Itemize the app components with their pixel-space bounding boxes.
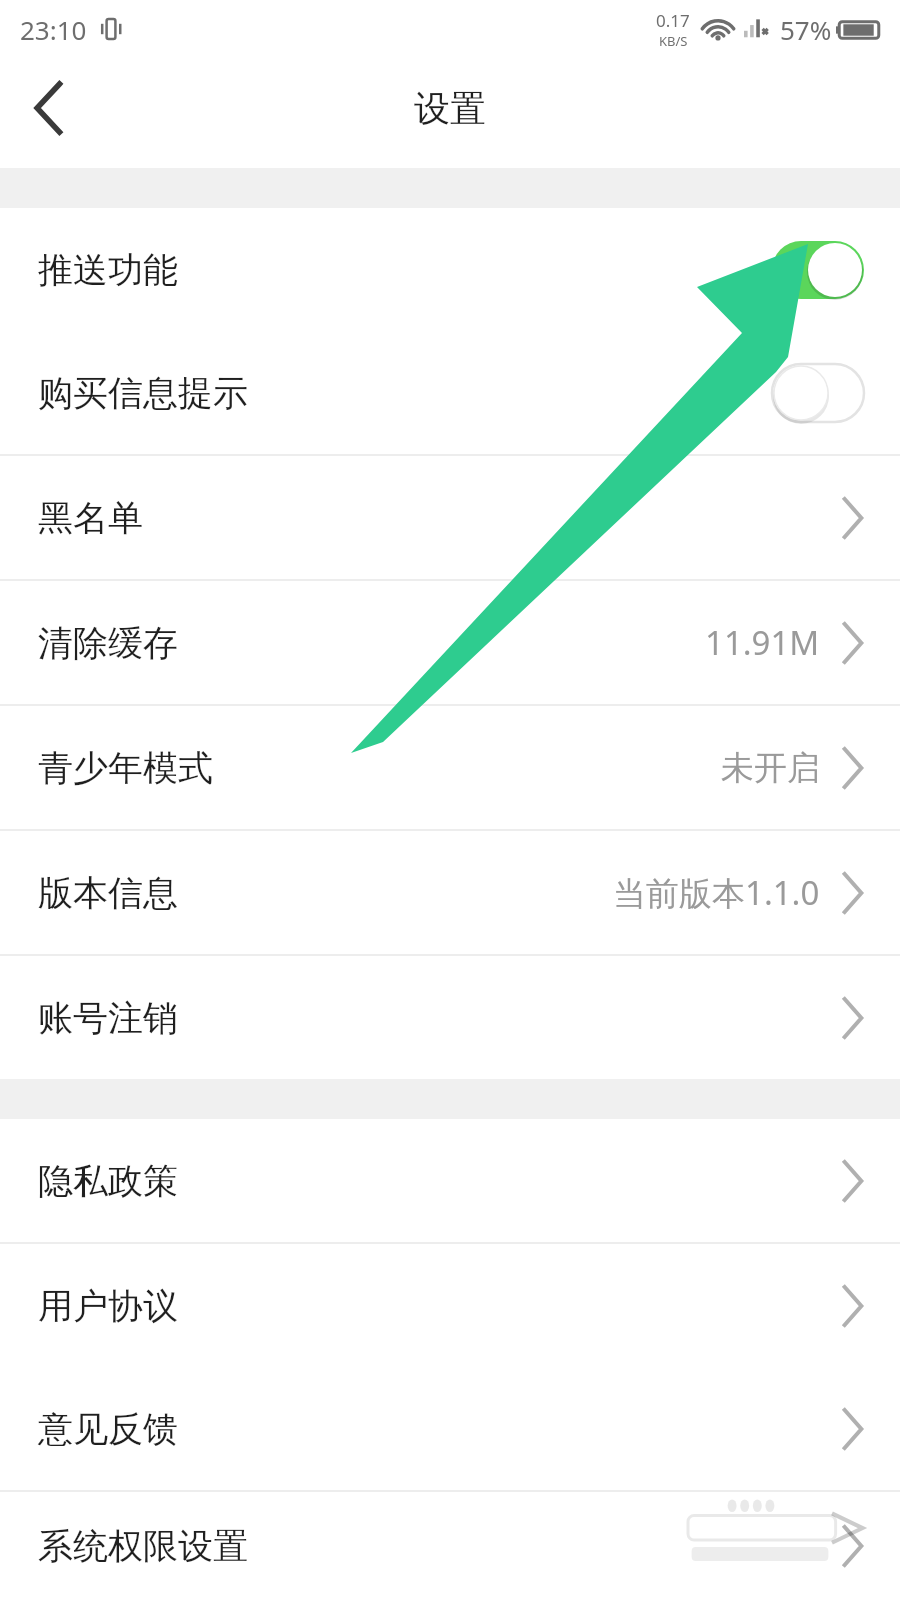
button[interactable]: 账号注销	[0, 956, 900, 1079]
staticText: 购买信息提示	[38, 371, 248, 415]
staticText: 清除缓存	[38, 621, 178, 665]
staticText: 账号注销	[38, 996, 178, 1040]
staticText: 推送功能	[38, 248, 178, 292]
staticText: 未开启	[721, 747, 820, 789]
button[interactable]: 购买信息提示 关闭	[772, 364, 864, 422]
button[interactable]: 黑名单	[0, 456, 900, 579]
staticText: 用户协议	[38, 1284, 178, 1328]
button[interactable]: 购买信息提示	[0, 331, 900, 454]
staticText: 57%	[780, 12, 832, 47]
staticText: 11.91M	[705, 620, 820, 665]
button[interactable]: 用户协议	[0, 1244, 900, 1367]
staticText: KB/S	[659, 32, 688, 50]
staticText: 系统权限设置	[38, 1524, 248, 1568]
button[interactable]: 青少年模式	[0, 706, 900, 829]
button[interactable]: 意见反馈	[0, 1367, 900, 1490]
staticText: 0.17	[656, 9, 690, 32]
button[interactable]: Back	[0, 58, 100, 158]
staticText: 23:10	[20, 12, 87, 47]
staticText: 意见反馈	[38, 1407, 178, 1451]
button[interactable]: 清除缓存	[0, 581, 900, 704]
button[interactable]: 推送功能	[0, 208, 900, 331]
staticText: 版本信息	[38, 871, 178, 915]
staticText: 青少年模式	[38, 746, 213, 790]
button[interactable]: 系统权限设置	[0, 1492, 900, 1600]
button[interactable]: 版本信息	[0, 831, 900, 954]
staticText: 隐私政策	[38, 1159, 178, 1203]
button[interactable]: 推送功能 开启	[772, 241, 864, 299]
staticText: 黑名单	[38, 496, 143, 540]
staticText: 当前版本1.1.0	[613, 870, 820, 915]
staticText: 设置	[414, 86, 486, 131]
button[interactable]: 隐私政策	[0, 1119, 900, 1242]
